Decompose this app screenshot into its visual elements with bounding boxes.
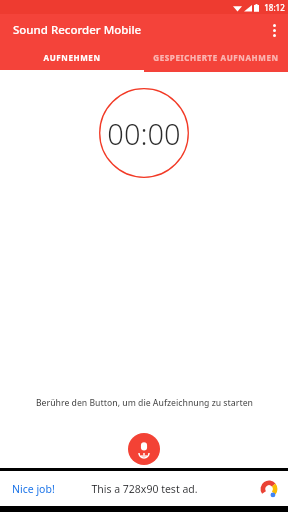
staticText: 00:00 (107, 114, 181, 153)
staticText: AUFNEHMEN (43, 52, 101, 63)
staticText: Nice job! (12, 482, 55, 496)
staticText: 18:12 (264, 2, 285, 13)
button[interactable]: Nice job! (0, 471, 288, 506)
button[interactable]: GESPEICHERTE AUFNAHMEN (144, 45, 288, 70)
button[interactable]: Mehr Optionen (260, 16, 288, 44)
staticText: Berühre den Button, um die Aufzeichnung … (36, 397, 253, 409)
button[interactable]: 00:00 (99, 88, 189, 178)
staticText: Sound Recorder Mobile (13, 22, 142, 38)
staticText: GESPEICHERTE AUFNAHMEN (153, 52, 279, 63)
button[interactable]: AUFNEHMEN (0, 45, 144, 70)
staticText: This a 728x90 test ad. (91, 482, 198, 496)
button[interactable]: Aufnahme starten (128, 433, 160, 465)
